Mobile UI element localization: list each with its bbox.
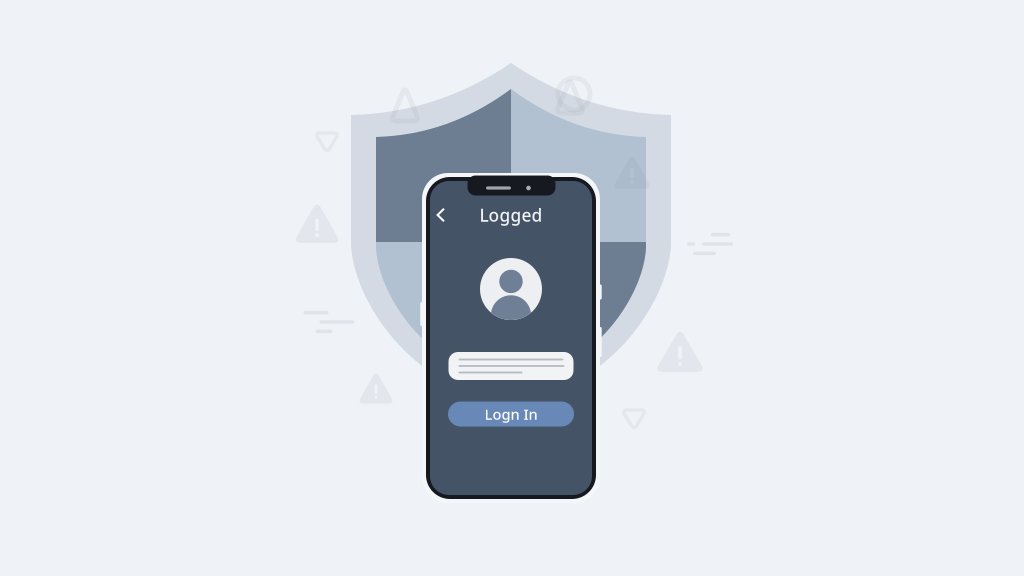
staticText: Logged xyxy=(479,203,542,226)
button[interactable]: Back xyxy=(429,200,453,229)
button[interactable]: Logn In xyxy=(448,401,574,426)
staticText: Logn In xyxy=(484,404,537,424)
